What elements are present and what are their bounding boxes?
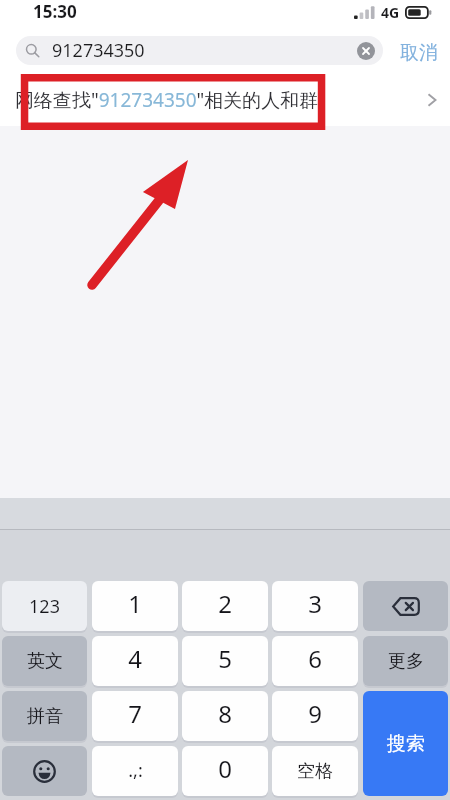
staticText: 拼音 bbox=[27, 705, 63, 728]
staticText: 取消 bbox=[400, 41, 438, 65]
button[interactable]: 7 bbox=[92, 691, 178, 741]
staticText: 更多 bbox=[388, 650, 424, 673]
button[interactable]: Backspace bbox=[363, 581, 448, 631]
button[interactable]: 5 bbox=[182, 636, 268, 686]
button[interactable]: 0 bbox=[182, 746, 268, 796]
staticText: .,: bbox=[128, 758, 143, 783]
button[interactable]: 更多 bbox=[363, 636, 448, 686]
staticText: 网络查找"912734350"相关的人和群 bbox=[15, 87, 319, 113]
button[interactable]: 网络查找"912734350"相关的人和群 bbox=[0, 74, 450, 126]
staticText: 0 bbox=[218, 752, 232, 785]
staticText: 1 bbox=[128, 587, 142, 620]
staticText: 7 bbox=[128, 697, 142, 730]
staticText: 搜索 bbox=[387, 732, 425, 756]
button[interactable]: .,: bbox=[92, 746, 178, 796]
button[interactable]: 空格 bbox=[272, 746, 358, 796]
staticText: 15:30 bbox=[33, 0, 77, 23]
staticText: 4G bbox=[381, 3, 400, 22]
button[interactable]: 6 bbox=[272, 636, 358, 686]
staticText: 空格 bbox=[297, 760, 333, 783]
button[interactable]: 912734350 bbox=[16, 36, 383, 65]
button[interactable]: 8 bbox=[182, 691, 268, 741]
button[interactable]: 1 bbox=[92, 581, 178, 631]
staticText: 8 bbox=[218, 697, 232, 730]
staticText: 9 bbox=[308, 697, 322, 730]
staticText: 912734350 bbox=[52, 38, 145, 63]
button[interactable]: 拼音 bbox=[2, 691, 87, 741]
button[interactable]: Emoji keyboard bbox=[2, 746, 87, 796]
button[interactable]: 2 bbox=[182, 581, 268, 631]
button[interactable]: Clear text bbox=[357, 42, 375, 60]
button[interactable]: 英文 bbox=[2, 636, 87, 686]
button[interactable]: 3 bbox=[272, 581, 358, 631]
staticText: 3 bbox=[308, 587, 322, 620]
button[interactable]: 搜索 bbox=[363, 691, 448, 796]
staticText: 5 bbox=[218, 642, 232, 675]
button[interactable]: 9 bbox=[272, 691, 358, 741]
staticText: 4 bbox=[128, 642, 142, 675]
button[interactable]: 4 bbox=[92, 636, 178, 686]
button[interactable]: 123 bbox=[2, 581, 87, 631]
staticText: 123 bbox=[29, 594, 60, 619]
staticText: 英文 bbox=[27, 650, 63, 673]
staticText: 6 bbox=[308, 642, 322, 675]
staticText: 2 bbox=[218, 587, 232, 620]
button[interactable]: 取消 bbox=[395, 32, 450, 74]
